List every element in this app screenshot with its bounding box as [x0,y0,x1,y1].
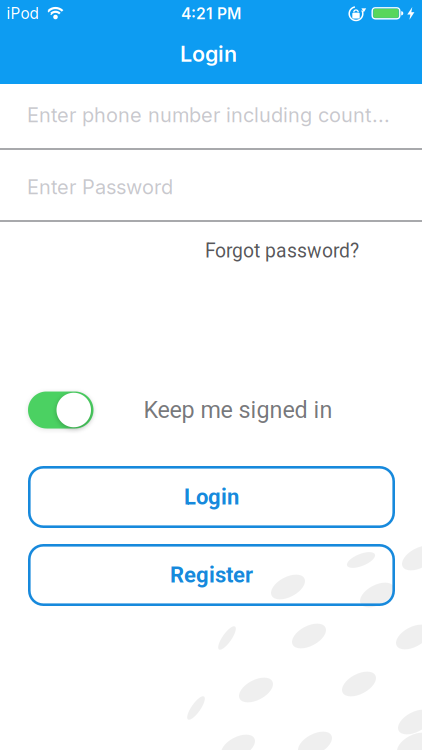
staticText: 4:21 PM [181,4,241,23]
staticText: Register [170,562,253,588]
staticText: Login [184,484,239,510]
button[interactable] [28,391,93,428]
button[interactable]: Enter phone number including count... [27,83,422,147]
staticText: Enter Password [27,175,173,199]
staticText: Keep me signed in [143,396,332,424]
staticText: Login [180,41,237,67]
button[interactable]: Enter Password [27,155,422,219]
button[interactable]: Register [28,544,395,606]
button[interactable]: Login [28,466,395,528]
button[interactable]: Forgot password? [205,240,359,262]
staticText: Forgot password? [205,240,359,262]
staticText: Enter phone number including count... [27,103,390,127]
staticText: iPod [6,4,38,23]
